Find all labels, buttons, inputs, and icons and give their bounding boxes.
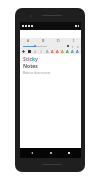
button[interactable]: Clear format: [39, 49, 44, 54]
button[interactable]: Text colour: [45, 49, 50, 54]
staticText: v: [77, 44, 79, 49]
button[interactable]: Recent apps: [63, 148, 75, 158]
button[interactable]: Highlight: [33, 49, 38, 54]
staticText: A: [40, 49, 43, 54]
button[interactable]: Format option: [70, 43, 75, 49]
staticText: A: [71, 49, 74, 54]
staticText: Sticky: [23, 56, 38, 63]
staticText: D: [57, 38, 60, 43]
staticText: Notes: [23, 63, 38, 70]
button[interactable]: Back: [26, 148, 38, 158]
staticText: A: [46, 49, 49, 54]
button[interactable]: Font size: [23, 43, 47, 49]
button[interactable]: Format option: [75, 43, 80, 49]
button[interactable]: Text colour: [75, 49, 80, 54]
staticText: Make us those current: [23, 71, 51, 75]
button[interactable]: Text colour: [65, 49, 70, 54]
staticText: A: [76, 49, 79, 54]
staticText: A: [34, 49, 37, 54]
staticText: r: [72, 44, 74, 49]
button[interactable]: A: [20, 38, 36, 43]
staticText: A: [51, 49, 54, 54]
staticText: A: [61, 49, 64, 54]
staticText: A: [66, 49, 69, 54]
button[interactable]: B: [36, 38, 51, 43]
button[interactable]: Text colour: [50, 49, 55, 54]
button[interactable]: Home: [45, 148, 57, 158]
button[interactable]: Text colour: [70, 49, 75, 54]
button[interactable]: Text colour: [60, 49, 65, 54]
staticText: B: [42, 38, 45, 43]
button[interactable]: I: [66, 38, 81, 43]
button[interactable]: Format option: [65, 43, 70, 49]
staticText: A: [27, 38, 30, 43]
staticText: A: [56, 49, 59, 54]
staticText: I: [73, 38, 75, 43]
button[interactable]: D: [51, 38, 66, 43]
button[interactable]: Text colour: [55, 49, 60, 54]
button[interactable]: Add: [21, 49, 26, 54]
button[interactable]: Insert image: [27, 49, 32, 54]
